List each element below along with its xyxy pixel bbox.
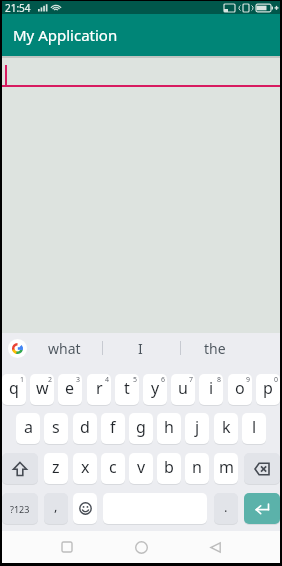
button[interactable]: t [115, 374, 139, 405]
button[interactable]: w [30, 374, 54, 405]
staticText: q [9, 377, 19, 399]
staticText: . [224, 498, 228, 516]
staticText: My Application [13, 25, 118, 45]
button[interactable]: b [157, 453, 181, 484]
button[interactable]: k [214, 413, 238, 444]
button[interactable]: m [214, 453, 238, 484]
button[interactable] [203, 535, 227, 559]
button[interactable] [8, 339, 27, 358]
staticText: m [219, 456, 234, 478]
button[interactable]: . [214, 493, 238, 524]
button[interactable]: z [44, 453, 68, 484]
staticText: 8 [217, 375, 222, 385]
staticText: what [48, 339, 81, 358]
button[interactable]: c [101, 453, 125, 484]
button[interactable]: ?123 [2, 493, 38, 524]
staticText: i [209, 377, 214, 399]
button[interactable]: r [87, 374, 111, 405]
staticText: j [195, 416, 200, 438]
staticText: 4 [105, 375, 110, 385]
button[interactable] [73, 493, 97, 524]
staticText: 2 [48, 375, 53, 385]
staticText: g [136, 416, 146, 438]
staticText: 3 [76, 375, 81, 385]
staticText: 7 [189, 375, 194, 385]
staticText: y [151, 377, 160, 399]
staticText: f [110, 416, 116, 438]
button[interactable]: , [44, 493, 68, 524]
staticText: s [52, 416, 60, 438]
button[interactable]: p [256, 374, 280, 405]
button[interactable]: d [73, 413, 97, 444]
staticText: I [138, 339, 143, 358]
staticText: r [96, 377, 103, 399]
staticText: n [192, 456, 202, 478]
button[interactable] [129, 535, 153, 559]
button[interactable]: I [110, 333, 170, 363]
button[interactable]: o [228, 374, 252, 405]
staticText: a [24, 416, 33, 438]
staticText: 1 [20, 375, 25, 385]
staticText: p [263, 377, 273, 399]
staticText: 9 [246, 375, 251, 385]
staticText: u [178, 377, 188, 399]
button[interactable]: s [44, 413, 68, 444]
staticText: the [204, 339, 226, 358]
button[interactable]: a [16, 413, 40, 444]
staticText: k [222, 416, 231, 438]
staticText: h [164, 416, 174, 438]
button[interactable]: v [129, 453, 153, 484]
staticText: l [252, 416, 257, 438]
button[interactable]: n [185, 453, 209, 484]
button[interactable]: x [73, 453, 97, 484]
staticText: 6 [161, 375, 166, 385]
staticText: c [109, 456, 117, 478]
button[interactable]: h [157, 413, 181, 444]
button[interactable]: the [185, 333, 245, 363]
button[interactable]: g [129, 413, 153, 444]
button[interactable]: f [101, 413, 125, 444]
staticText: 0 [274, 375, 279, 385]
staticText: z [52, 456, 60, 478]
button[interactable]: e [58, 374, 82, 405]
staticText: d [80, 416, 90, 438]
button[interactable] [244, 493, 280, 524]
staticText: ?123 [10, 503, 30, 515]
staticText: w [36, 377, 49, 399]
button[interactable]: y [143, 374, 167, 405]
staticText: o [235, 377, 245, 399]
staticText: x [81, 456, 90, 478]
button[interactable]: i [199, 374, 223, 405]
staticText: 5 [133, 375, 138, 385]
staticText: 21:54 [5, 1, 31, 14]
button[interactable]: q [2, 374, 26, 405]
button[interactable] [2, 453, 38, 484]
button[interactable]: what [34, 333, 94, 363]
button[interactable] [55, 535, 79, 559]
button[interactable]: j [185, 413, 209, 444]
button[interactable]: u [171, 374, 195, 405]
staticText: , [54, 497, 58, 515]
button[interactable] [244, 453, 280, 484]
staticText: t [124, 377, 130, 399]
button[interactable]: l [242, 413, 266, 444]
staticText: e [65, 377, 75, 399]
staticText: b [164, 456, 174, 478]
staticText: v [137, 456, 146, 478]
